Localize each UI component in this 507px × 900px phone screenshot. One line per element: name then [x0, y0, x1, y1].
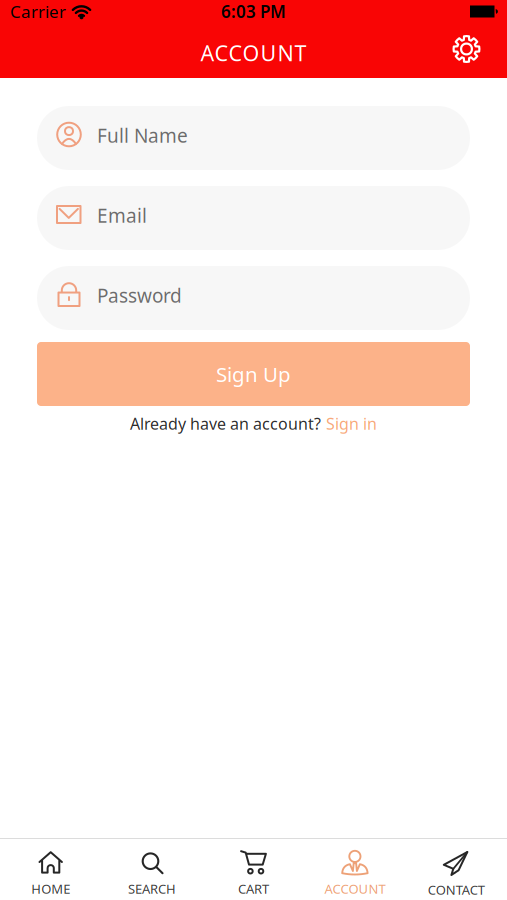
button[interactable]: Sign Up: [37, 342, 470, 406]
staticText: Full Name: [97, 123, 188, 148]
button[interactable]: CART: [203, 839, 304, 897]
staticText: CART: [238, 880, 269, 897]
textField[interactable]: Full Name: [37, 106, 470, 170]
staticText: ACCOUNT: [200, 39, 306, 67]
staticText: Sign in: [326, 413, 377, 434]
staticText: Sign Up: [216, 360, 291, 388]
staticText: Already have an account?: [130, 413, 321, 434]
staticText: Carrier: [10, 0, 66, 23]
button[interactable]: HOME: [0, 839, 101, 897]
button[interactable]: Settings: [452, 34, 481, 71]
staticText: SEARCH: [128, 880, 176, 897]
staticText: ACCOUNT: [324, 880, 385, 897]
staticText: Password: [97, 283, 182, 308]
button[interactable]: ACCOUNT: [304, 839, 406, 897]
textField[interactable]: Password: [37, 266, 470, 330]
button[interactable]: CONTACT: [406, 839, 507, 898]
textField[interactable]: Email: [37, 186, 470, 250]
staticText: Email: [97, 203, 147, 228]
staticText: HOME: [31, 880, 70, 897]
button[interactable]: Sign in: [326, 413, 377, 434]
button[interactable]: SEARCH: [101, 839, 203, 897]
staticText: CONTACT: [428, 881, 485, 898]
staticText: 6:03 PM: [221, 0, 286, 23]
